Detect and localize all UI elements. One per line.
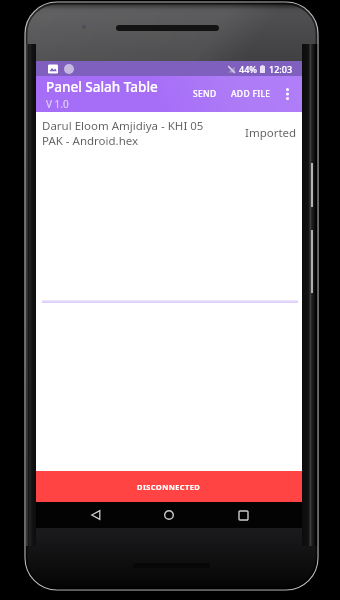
staticText: Imported [245, 125, 297, 141]
staticText: V 1.0 [46, 97, 69, 111]
staticText: ADD FILE [231, 88, 271, 100]
staticText: DISCONNECTED [137, 482, 201, 492]
button[interactable]: Recents [227, 502, 259, 528]
staticText: Panel Salah Table [46, 78, 158, 96]
staticText: 44% [239, 63, 257, 75]
button[interactable]: Home [153, 502, 185, 528]
button[interactable]: DISCONNECTED [36, 471, 302, 502]
staticText: SEND [193, 88, 217, 100]
staticText: 12:03 [269, 63, 293, 75]
button[interactable]: SEND [189, 76, 221, 112]
staticText: Darul Eloom Amjidiya - KHI 05 PAK - Andr… [42, 118, 245, 148]
button[interactable]: More options [274, 76, 300, 112]
button[interactable]: Back [80, 502, 112, 528]
button[interactable]: ADD FILE [228, 76, 274, 112]
